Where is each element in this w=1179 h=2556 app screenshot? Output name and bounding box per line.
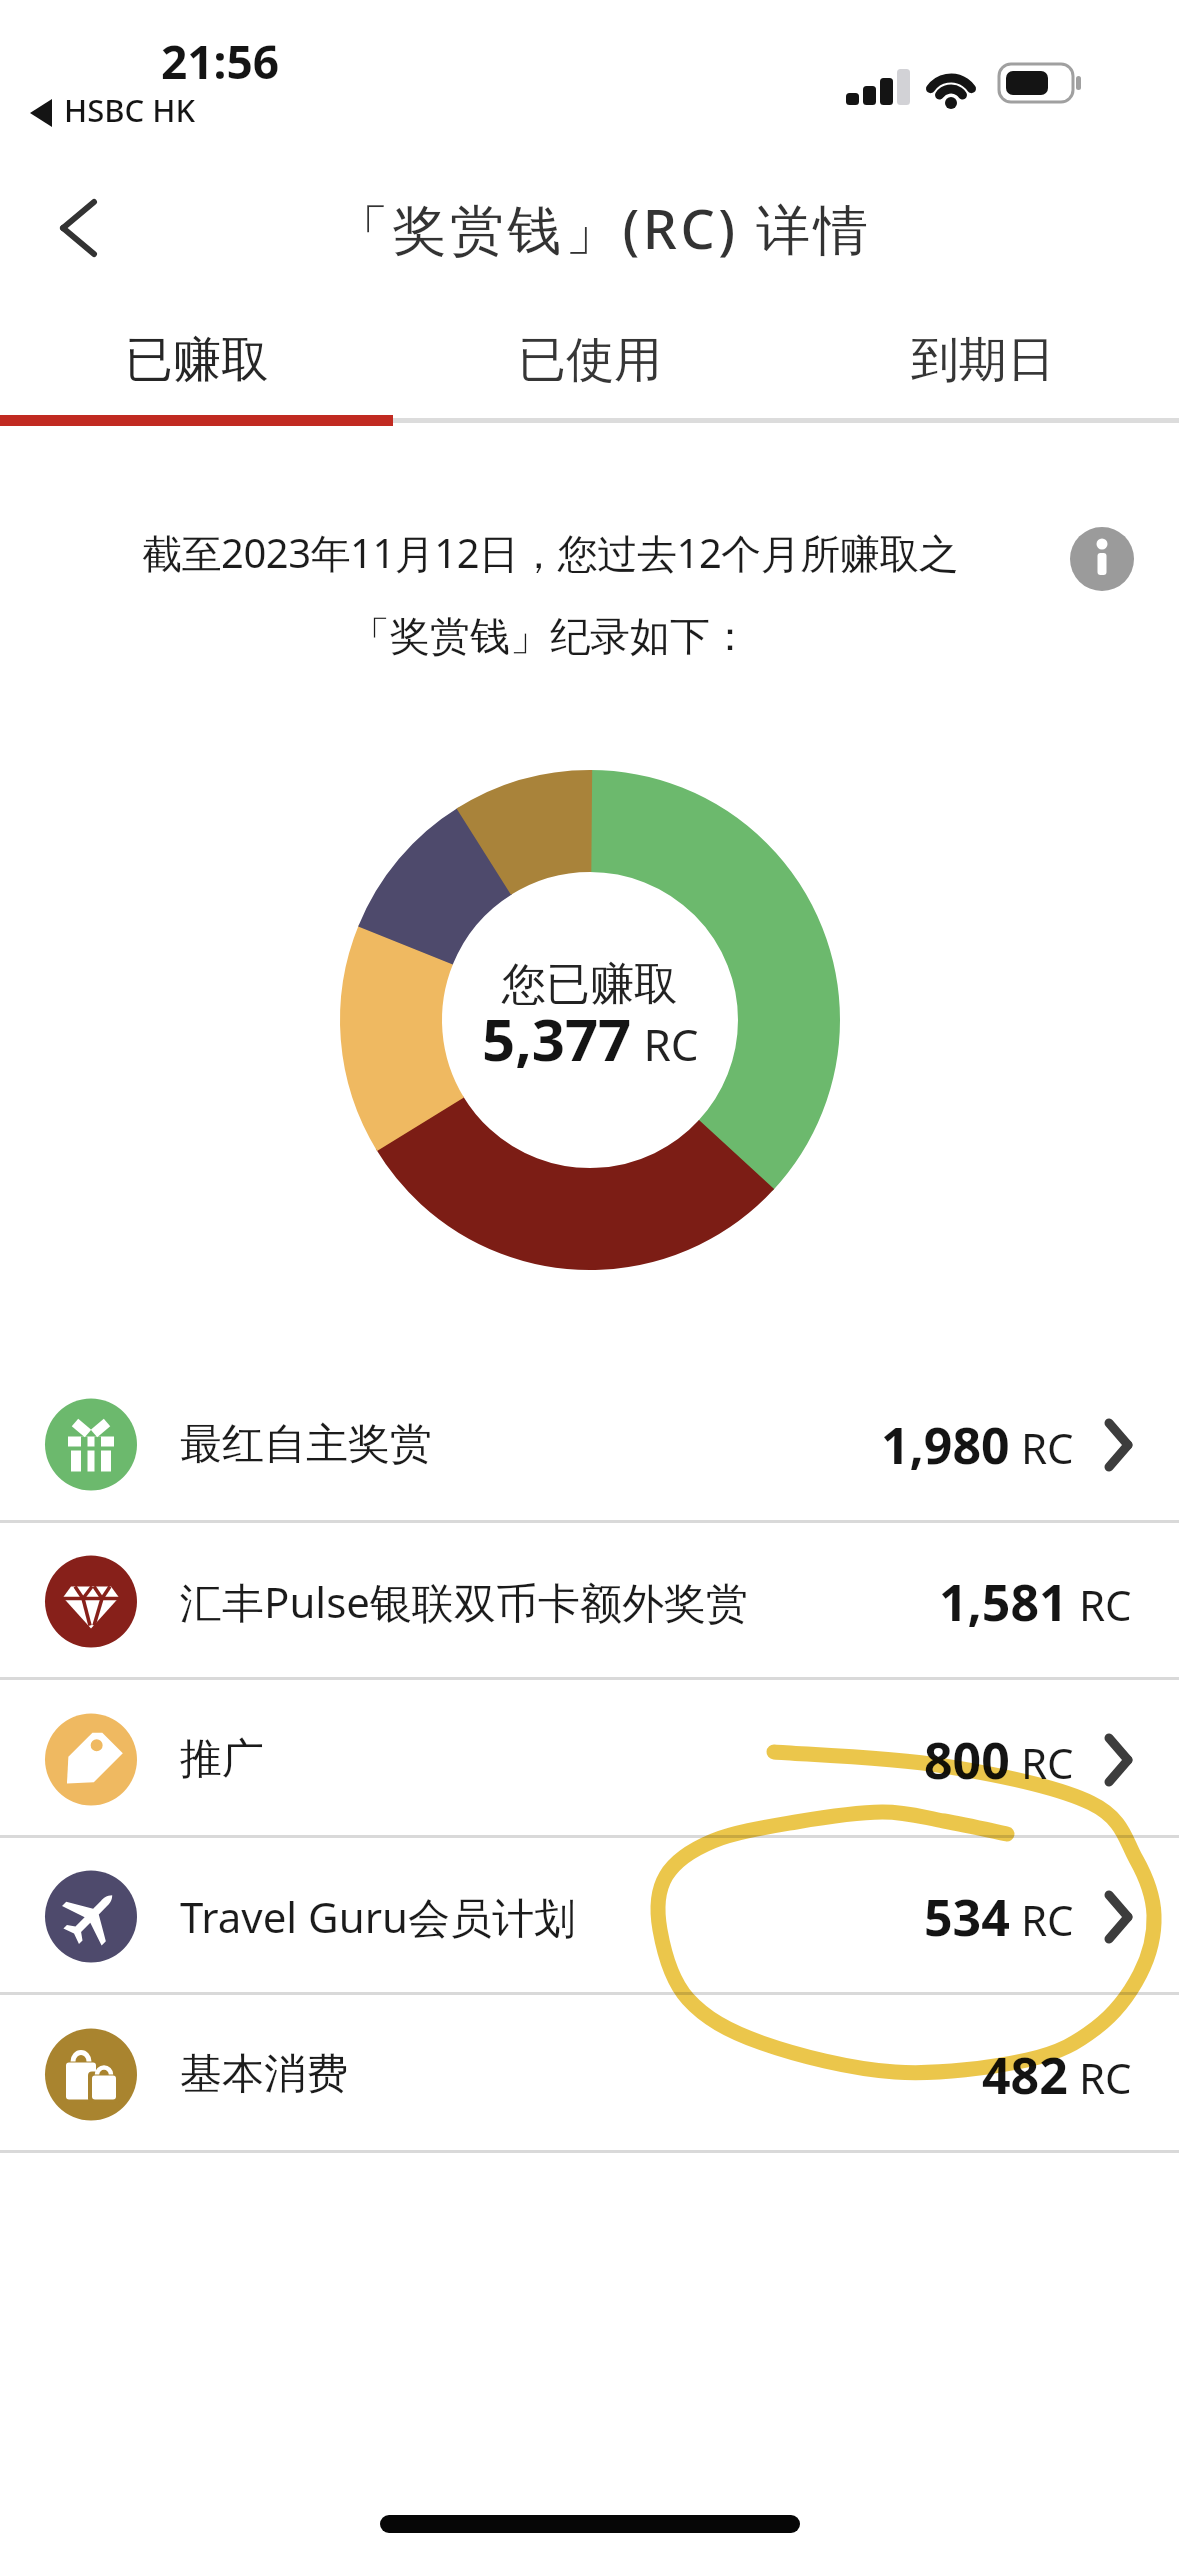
staticText: RC xyxy=(1010,1891,1074,1948)
staticText: 您已赚取 xyxy=(502,957,678,1012)
staticText: RC xyxy=(1068,2049,1132,2106)
button[interactable]: 已赚取 xyxy=(0,310,393,410)
staticText: 已使用 xyxy=(518,330,662,390)
button[interactable]: 基本消费 xyxy=(0,1996,1179,2153)
button[interactable]: 已使用 xyxy=(393,310,786,410)
staticText: 汇丰Pulse银联双币卡额外奖赏 xyxy=(180,1573,749,1630)
staticText: 已赚取 xyxy=(125,330,269,390)
button[interactable]: 推广 xyxy=(0,1681,1179,1838)
staticText: 基本消费 xyxy=(180,2048,348,2101)
button[interactable]: 汇丰Pulse银联双币卡额外奖赏 xyxy=(0,1523,1179,1680)
staticText: 800 xyxy=(924,1726,1010,1794)
staticText: 21:56 xyxy=(161,30,280,90)
staticText: 最红自主奖赏 xyxy=(180,1418,432,1471)
staticText: 5,377 xyxy=(482,999,632,1078)
staticText: RC xyxy=(632,1014,699,1074)
staticText: RC xyxy=(1068,1576,1132,1633)
staticText: 推广 xyxy=(180,1733,264,1786)
staticText: 1,581 xyxy=(939,1568,1068,1636)
staticText: 截至2023年11月12日，您过去12个月所赚取之 xyxy=(142,525,959,580)
staticText: 482 xyxy=(982,2041,1068,2109)
button[interactable]: 最红自主奖赏 xyxy=(0,1366,1179,1523)
staticText: HSBC HK xyxy=(64,89,196,131)
button[interactable] xyxy=(1070,527,1134,591)
staticText: 534 xyxy=(924,1883,1010,1951)
staticText: 到期日 xyxy=(911,330,1055,390)
button[interactable]: 到期日 xyxy=(786,310,1179,410)
staticText: 「奖赏钱」纪录如下： xyxy=(350,611,750,661)
button[interactable]: Travel Guru会员计划 xyxy=(0,1838,1179,1995)
staticText: RC xyxy=(1010,1419,1074,1476)
staticText: Travel Guru会员计划 xyxy=(180,1888,576,1945)
button[interactable] xyxy=(35,185,120,270)
staticText: 1,980 xyxy=(881,1411,1010,1479)
staticText: RC xyxy=(1010,1734,1074,1791)
staticText: 「奖赏钱」(RC) 详情 xyxy=(335,191,872,265)
